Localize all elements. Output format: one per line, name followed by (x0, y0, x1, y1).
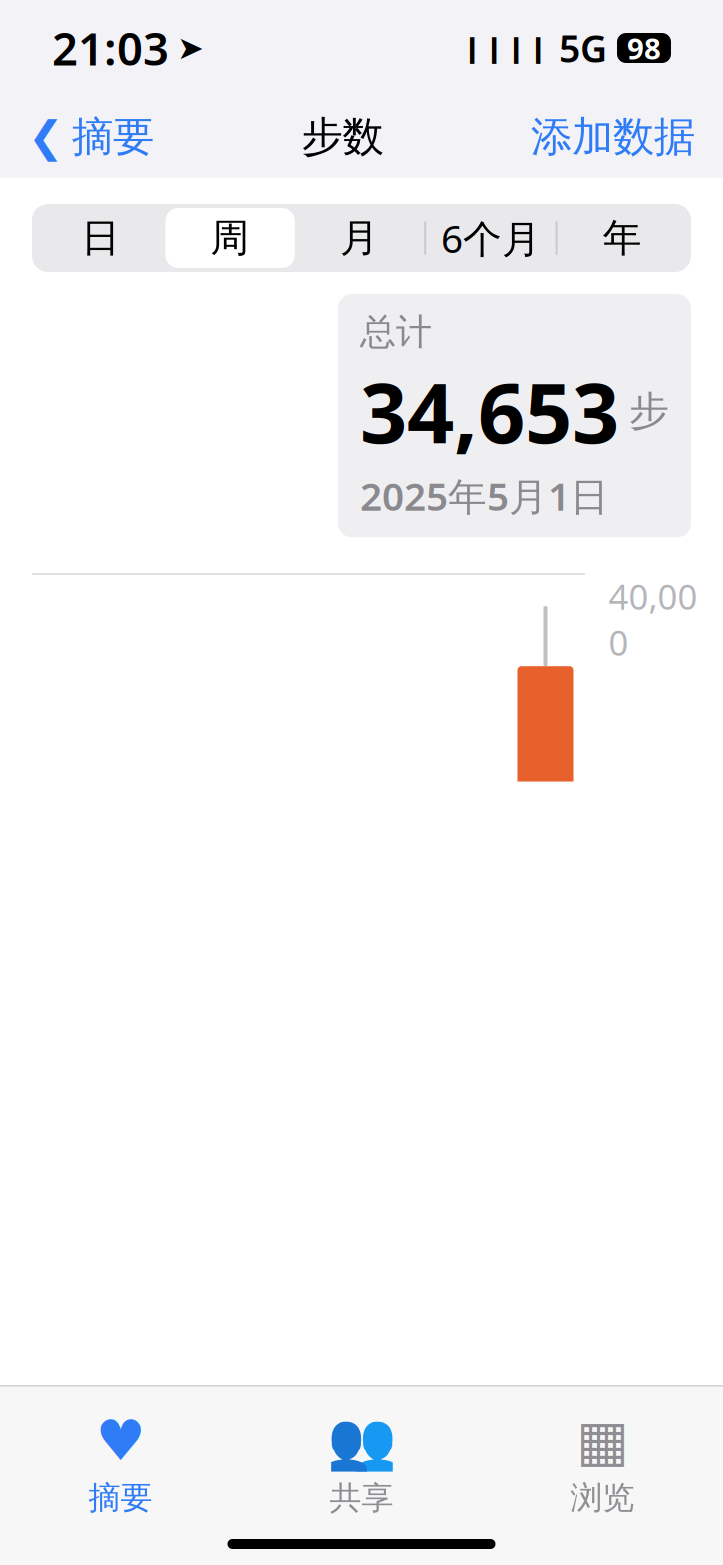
staticText: 日 (81, 214, 120, 262)
button[interactable]: ❮ (10, 102, 172, 172)
staticText: 21:03 (52, 18, 169, 78)
button[interactable]: 👥 (241, 1402, 482, 1524)
staticText: 步数 (126, 1491, 208, 1542)
button[interactable]: ▦ (482, 1403, 723, 1524)
staticText: ♥ (95, 1409, 145, 1472)
staticText: 摘要 (88, 1478, 152, 1518)
staticText: ➤ (177, 30, 204, 66)
staticText: 👥 (326, 1408, 396, 1472)
staticText: 40,000 (608, 573, 697, 665)
staticText: 34,653 (360, 356, 619, 466)
staticText: 摘要 (72, 112, 154, 162)
staticText: 周 (211, 214, 250, 262)
staticText: 2025年5月1日 (360, 470, 609, 521)
staticText: ▦ (576, 1409, 629, 1472)
staticText: 🔥 (68, 1493, 118, 1539)
staticText: 总计 (360, 310, 432, 354)
staticText: 全部显示 (519, 1394, 683, 1445)
staticText: ❙❙❙❙ (461, 33, 549, 63)
staticText: 添加数据 (531, 112, 695, 162)
staticText: 5G (559, 23, 607, 73)
button[interactable]: 6个月 (426, 208, 556, 268)
staticText: 浏览 (570, 1478, 634, 1518)
staticText: ❮ (28, 113, 64, 161)
staticText: 步 (629, 386, 669, 436)
staticText: 月 (340, 214, 379, 262)
button[interactable]: 全部显示 (519, 1386, 683, 1453)
staticText: 6个月 (441, 212, 541, 264)
button[interactable]: 日 (36, 208, 165, 268)
staticText: 提要 (40, 1384, 158, 1456)
staticText: 年 (603, 214, 642, 262)
staticText: 共享 (329, 1478, 393, 1518)
button[interactable]: 年 (558, 208, 687, 268)
button[interactable]: ♥ (0, 1403, 241, 1524)
staticText: 98 (627, 28, 661, 67)
button[interactable]: 添加数据 (513, 102, 713, 172)
button[interactable]: 🔥 (38, 1478, 685, 1565)
button[interactable]: 周 (165, 208, 295, 268)
staticText: 步数 (301, 112, 383, 162)
button[interactable]: 月 (295, 208, 424, 268)
